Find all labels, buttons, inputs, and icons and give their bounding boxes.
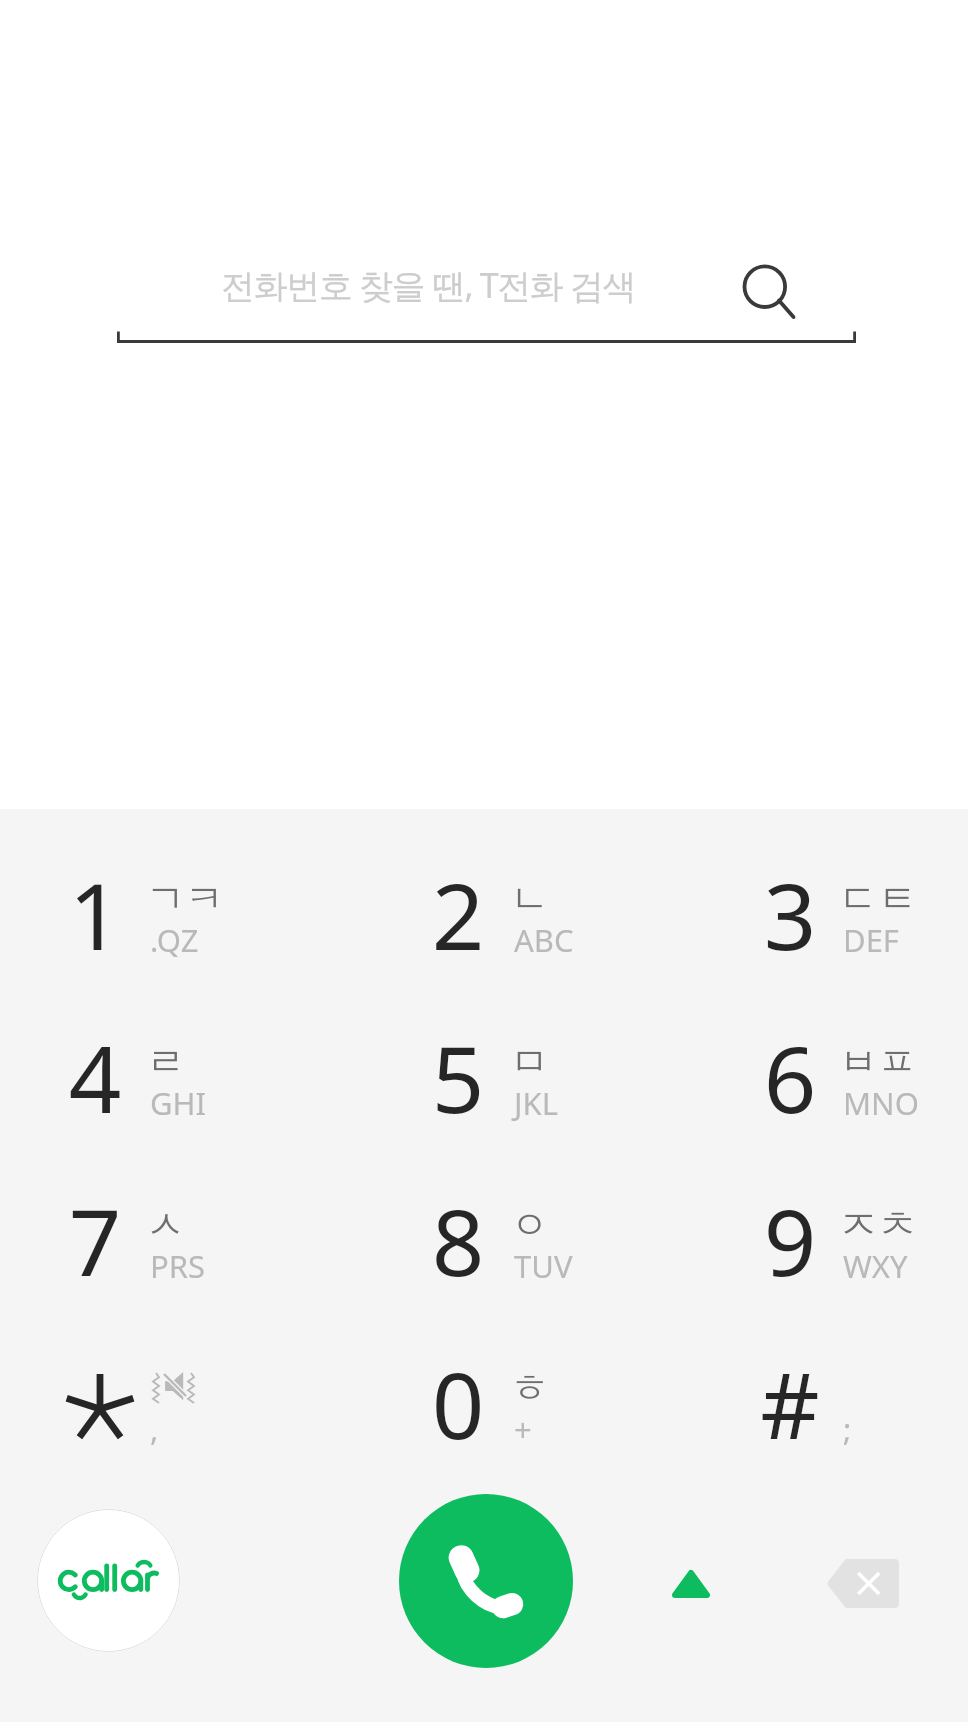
staticText: 1 (15, 852, 175, 977)
staticText: GHI (150, 1082, 207, 1124)
staticText: .QZ (150, 919, 199, 961)
button[interactable]: 4 (0, 1000, 245, 1163)
button[interactable]: 2 (358, 837, 608, 1000)
staticText: 4 (15, 1015, 175, 1140)
staticText: ㄱㅋ (146, 874, 224, 923)
staticText: ㅁ (510, 1037, 549, 1086)
button[interactable]: 0 (358, 1326, 608, 1489)
staticText: ㅈㅊ (839, 1200, 917, 1249)
staticText: ㅅ (146, 1200, 185, 1249)
button[interactable]: Expand keypad (651, 1544, 731, 1624)
staticText: DEF (843, 919, 899, 961)
button[interactable]: 7 (0, 1163, 245, 1326)
staticText: # (710, 1341, 870, 1466)
staticText: 전화번호 찾을 땐, T전화 검색 (221, 262, 636, 308)
button[interactable]: 전화번호 찾을 땐, T전화 검색 (117, 245, 856, 355)
button[interactable]: 8 (358, 1163, 608, 1326)
staticText: MNO (843, 1082, 919, 1124)
button[interactable]: 6 (690, 1000, 940, 1163)
staticText: PRS (150, 1245, 206, 1287)
staticText: 8 (378, 1178, 538, 1303)
other: Search (737, 257, 809, 329)
staticText: + (514, 1408, 532, 1450)
staticText: 5 (378, 1015, 538, 1140)
staticText: 7 (15, 1178, 175, 1303)
staticText: ; (843, 1408, 852, 1450)
staticText: , (150, 1408, 159, 1450)
button[interactable]: 5 (358, 1000, 608, 1163)
button[interactable]: Call (399, 1494, 573, 1668)
staticText: 3 (710, 852, 870, 977)
staticText: ㄷㅌ (839, 874, 917, 923)
staticText: ㅎ (510, 1363, 549, 1412)
staticText: 2 (378, 852, 538, 977)
button[interactable]: callar (37, 1509, 180, 1652)
staticText: ㄴ (510, 874, 549, 923)
staticText: ㅂㅍ (839, 1037, 917, 1086)
staticText: 9 (710, 1178, 870, 1303)
staticText: ㅇ (510, 1200, 549, 1249)
button[interactable]: 3 (690, 837, 940, 1000)
button[interactable]: Backspace (816, 1544, 909, 1622)
staticText: 6 (710, 1015, 870, 1140)
button[interactable]: # (690, 1326, 940, 1489)
staticText: 0 (378, 1341, 538, 1466)
staticText: ㄹ (146, 1037, 185, 1086)
staticText: JKL (514, 1082, 558, 1124)
staticText: TUV (514, 1245, 573, 1287)
staticText: ABC (514, 919, 574, 961)
button[interactable]: 1 (0, 837, 245, 1000)
button[interactable]: 9 (690, 1163, 940, 1326)
staticText: WXY (843, 1245, 908, 1287)
button[interactable]: star (0, 1326, 245, 1489)
